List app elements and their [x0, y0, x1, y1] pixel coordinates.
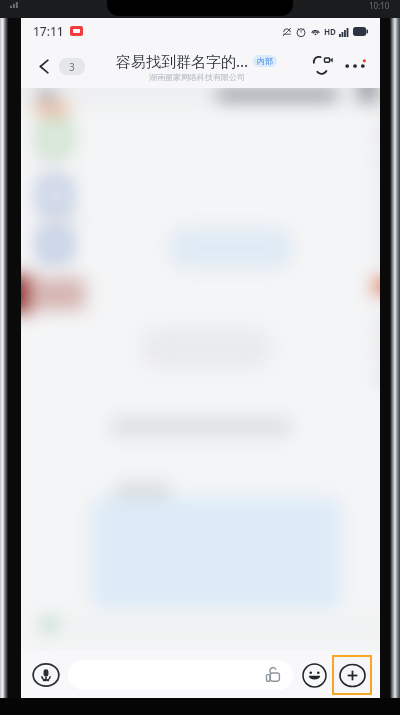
button[interactable]: Back — [29, 51, 59, 81]
button[interactable]: Emoji — [298, 659, 330, 691]
button[interactable]: 容易找到群名字的… — [85, 51, 308, 82]
staticText: 17:11 — [33, 23, 64, 39]
staticText: 10:10 — [369, 0, 390, 10]
button[interactable]: Voice message — [29, 658, 63, 692]
staticText: 3 — [69, 60, 75, 74]
staticText: HD — [324, 26, 336, 37]
button[interactable]: More options — [340, 51, 370, 81]
button[interactable]: More actions — [334, 657, 370, 693]
button[interactable]: Video call — [308, 51, 338, 81]
staticText: 内部 — [257, 56, 273, 66]
staticText: 容易找到群名字的… — [116, 51, 249, 71]
staticText: H — [370, 300, 380, 312]
button[interactable]: Unread 3 — [59, 58, 85, 75]
staticText: G — [370, 276, 380, 288]
button[interactable]: Thumbs up — [68, 660, 293, 690]
button[interactable]: Thumbs up — [263, 664, 285, 686]
staticText: 湖南丽家网络科技有限公司 — [149, 72, 245, 82]
